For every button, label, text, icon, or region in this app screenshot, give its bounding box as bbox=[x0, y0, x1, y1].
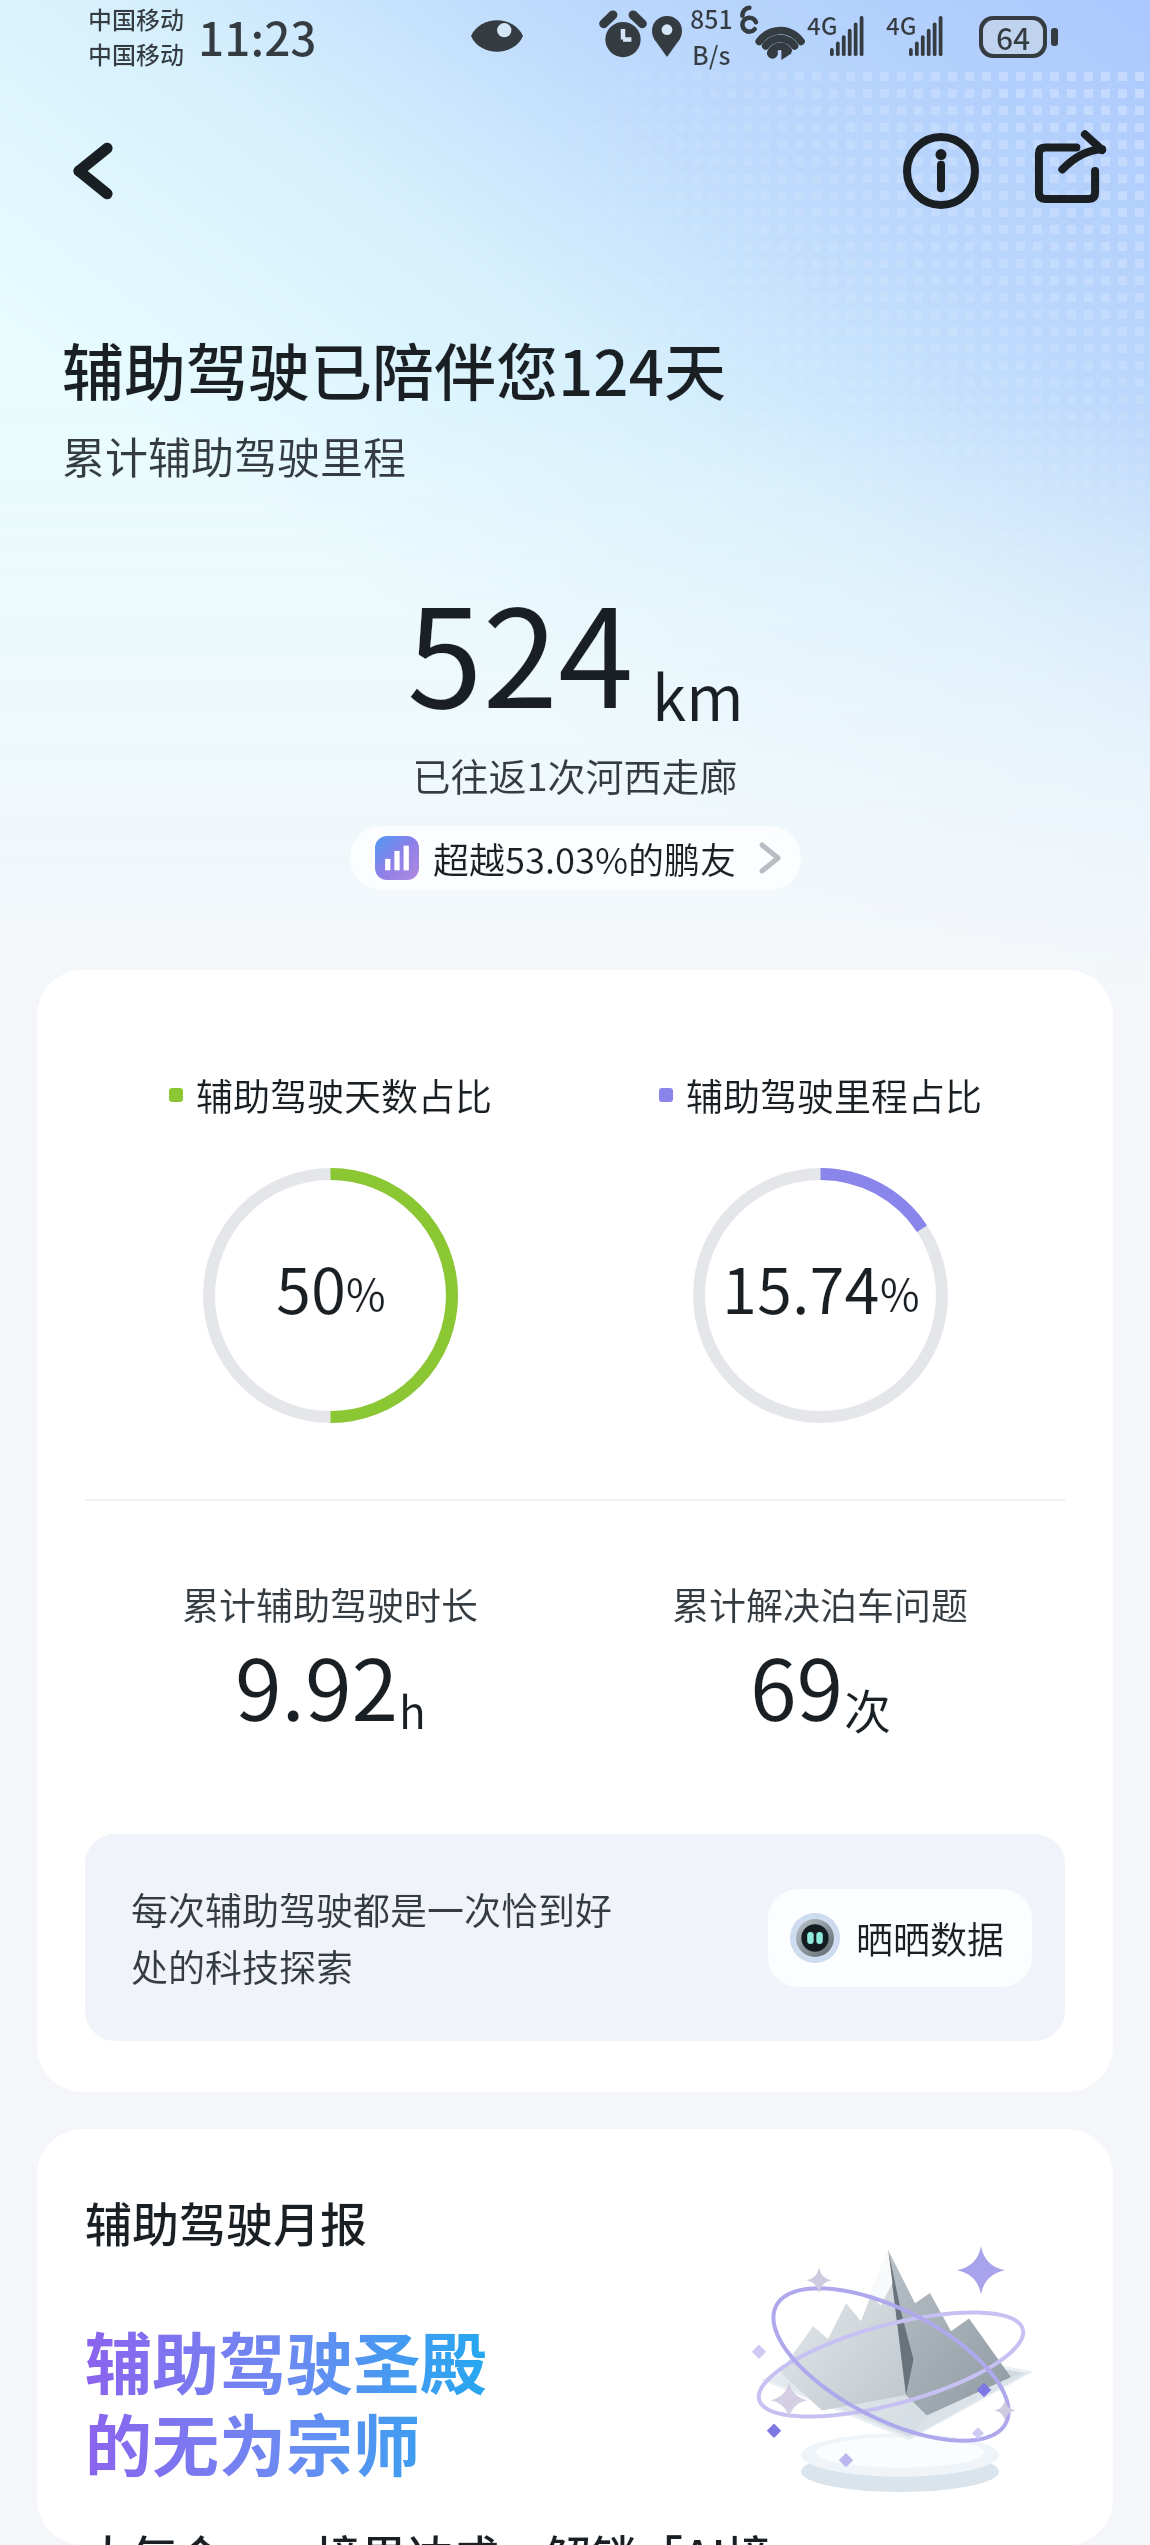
button[interactable]: Share bbox=[1028, 132, 1106, 210]
staticText: 已往返1次河西走廊 bbox=[0, 747, 1150, 802]
staticText: km bbox=[652, 649, 744, 739]
staticText: 11:23 bbox=[198, 3, 317, 70]
staticText: 辅助驾驶圣殿 的无为宗师 bbox=[85, 2311, 487, 2490]
staticText: 辅助驾驶里程占比 bbox=[686, 1068, 982, 1122]
staticText: 辅助驾驶天数占比 bbox=[196, 1068, 492, 1122]
staticText: 4G bbox=[886, 7, 917, 42]
button[interactable]: Info bbox=[902, 132, 980, 210]
staticText: h bbox=[399, 1678, 426, 1742]
staticText: 50 bbox=[276, 1241, 346, 1332]
staticText: 大气合一，境界达成，解锁「AI境 bbox=[85, 2521, 772, 2545]
staticText: 851 bbox=[690, 0, 733, 36]
staticText: % bbox=[346, 1261, 386, 1323]
staticText: 中国移动 bbox=[88, 1, 184, 36]
staticText: 辅助驾驶月报 bbox=[85, 2187, 367, 2255]
staticText: 晒晒数据 bbox=[856, 1911, 1004, 1965]
staticText: 超越53.03%的鹏友 bbox=[433, 832, 737, 884]
staticText: 每次辅助驾驶都是一次恰到好 处的科技探索 bbox=[131, 1882, 612, 1993]
staticText: 15.74 bbox=[722, 1241, 880, 1332]
staticText: 4G bbox=[807, 7, 838, 42]
staticText: % bbox=[880, 1261, 920, 1323]
staticText: 中国移动 bbox=[88, 36, 184, 71]
staticText: 524 bbox=[407, 550, 634, 747]
staticText: 累计辅助驾驶里程 bbox=[62, 424, 406, 486]
button[interactable]: Back bbox=[60, 133, 136, 209]
staticText: 9.92 bbox=[235, 1624, 399, 1746]
button[interactable]: 晒晒数据 bbox=[768, 1889, 1032, 1987]
staticText: 累计解决泊车问题 bbox=[672, 1577, 968, 1631]
staticText: 次 bbox=[844, 1674, 891, 1742]
button[interactable]: 超越53.03%的鹏友 bbox=[350, 826, 801, 890]
staticText: 累计辅助驾驶时长 bbox=[182, 1577, 478, 1631]
staticText: 辅助驾驶已陪伴您124天 bbox=[62, 324, 727, 414]
staticText: 69 bbox=[750, 1624, 844, 1746]
staticText: B/s bbox=[692, 36, 731, 72]
staticText: 64 bbox=[996, 15, 1031, 58]
